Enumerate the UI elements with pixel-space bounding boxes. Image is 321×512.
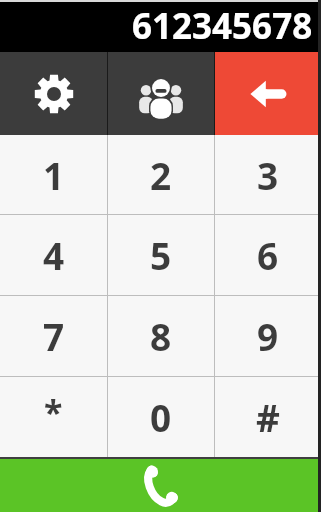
staticText: 0 <box>150 392 172 442</box>
staticText: 1 <box>43 150 65 200</box>
button[interactable]: 3 <box>215 135 321 214</box>
staticText: * <box>44 389 63 435</box>
button[interactable]: 1 <box>0 135 107 214</box>
button[interactable]: * <box>0 377 107 457</box>
staticText: 2 <box>150 150 172 200</box>
button[interactable]: 0 <box>108 377 214 457</box>
staticText: 7 <box>43 311 65 361</box>
button[interactable]: Contacts <box>108 52 214 135</box>
staticText: 4 <box>43 230 65 280</box>
staticText: 6 <box>257 230 279 280</box>
button[interactable]: 7 <box>0 296 107 376</box>
button[interactable]: 2 <box>108 135 214 214</box>
staticText: 8 <box>150 311 172 361</box>
button[interactable]: 612345678 <box>0 2 321 52</box>
button[interactable]: 5 <box>108 215 214 295</box>
button[interactable]: Settings <box>0 52 107 135</box>
button[interactable]: 4 <box>0 215 107 295</box>
staticText: 5 <box>150 230 172 280</box>
button[interactable]: Call <box>0 459 321 512</box>
button[interactable]: Backspace <box>215 52 321 135</box>
button[interactable]: # <box>215 377 321 457</box>
staticText: 3 <box>257 150 279 200</box>
button[interactable]: 9 <box>215 296 321 376</box>
staticText: 9 <box>257 311 279 361</box>
button[interactable]: 6 <box>215 215 321 295</box>
staticText: 612345678 <box>132 2 313 50</box>
staticText: # <box>256 392 280 442</box>
button[interactable]: 8 <box>108 296 214 376</box>
